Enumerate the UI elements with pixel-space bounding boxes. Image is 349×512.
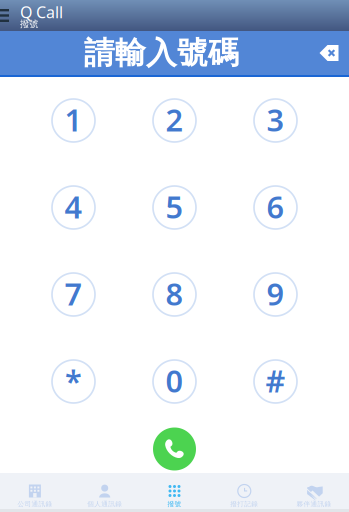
staticText: 3 [266,99,284,140]
staticText: 撥號 [20,18,38,30]
staticText: 4 [64,186,82,227]
staticText: 個人通訊錄 [87,500,122,508]
button[interactable]: 夥伴通訊錄 [279,473,349,509]
staticText: 6 [266,186,284,227]
staticText: # [265,360,285,401]
button[interactable]: 撥打記錄 [209,473,279,509]
button[interactable]: 8 [124,251,225,338]
staticText: 0 [165,360,183,401]
button[interactable]: 1 [23,77,124,164]
button[interactable]: Menu [0,0,20,31]
staticText: 請輸入號碼 [84,34,239,72]
staticText: 8 [165,273,183,314]
button[interactable]: # [225,338,326,425]
button[interactable]: 公司通訊錄 [0,473,70,509]
button[interactable]: 7 [23,251,124,338]
button[interactable]: 個人通訊錄 [70,473,140,509]
staticText: Q Call [20,1,63,23]
button[interactable]: 撥號 [140,473,209,509]
button[interactable]: 2 [124,77,225,164]
button[interactable]: 9 [225,251,326,338]
button[interactable]: 6 [225,164,326,251]
staticText: 5 [165,186,183,227]
staticText: 1 [64,99,82,140]
button[interactable]: Call [144,425,204,473]
button[interactable]: * [23,338,124,425]
staticText: 9 [266,273,284,314]
staticText: * [65,360,82,401]
button[interactable]: 5 [124,164,225,251]
staticText: 撥號 [167,500,181,508]
staticText: 2 [165,99,183,140]
staticText: 7 [64,273,82,314]
button[interactable]: 3 [225,77,326,164]
staticText: 公司通訊錄 [17,500,52,508]
button[interactable]: 4 [23,164,124,251]
button[interactable]: Delete [309,31,349,75]
button[interactable]: 0 [124,338,225,425]
staticText: 夥伴通訊錄 [297,500,332,508]
staticText: 撥打記錄 [230,500,258,508]
